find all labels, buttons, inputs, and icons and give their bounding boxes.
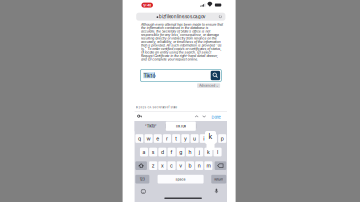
button[interactable]: w [144, 134, 153, 143]
staticText: r [166, 135, 168, 142]
button[interactable]: space [158, 175, 204, 183]
button[interactable]: t [172, 134, 180, 143]
button[interactable]: m [204, 161, 212, 170]
button[interactable]: b [186, 161, 194, 170]
button[interactable]: d [158, 148, 166, 156]
staticText: z [152, 163, 155, 169]
button[interactable]: Advanced [197, 83, 220, 88]
staticText: Done [212, 115, 221, 120]
button[interactable]: f [167, 148, 176, 156]
staticText: p [221, 135, 224, 142]
button[interactable]: c [168, 161, 176, 170]
button[interactable]: p [218, 134, 226, 143]
staticText: h [188, 149, 191, 155]
button[interactable]: y [181, 134, 189, 143]
staticText: c [170, 163, 173, 169]
button[interactable]: k [204, 148, 212, 156]
staticText: l [217, 149, 218, 155]
staticText: t [175, 135, 177, 142]
button[interactable]: Emoji keyboard [141, 189, 146, 194]
button[interactable]: x [158, 161, 166, 170]
staticText: j [199, 149, 200, 155]
button[interactable]: g [177, 148, 185, 156]
staticText: m [206, 163, 210, 169]
button[interactable]: n [195, 161, 203, 170]
staticText: w [147, 135, 151, 142]
button[interactable]: r [163, 134, 171, 143]
button[interactable]: h [186, 148, 194, 156]
button[interactable]: z [149, 161, 157, 170]
staticText: e [156, 135, 159, 142]
staticText: k [207, 149, 210, 155]
staticText: x [161, 163, 164, 169]
staticText: Tikto [143, 72, 155, 79]
button[interactable]: e [154, 134, 162, 143]
staticText: space [176, 177, 186, 181]
staticText: bizfileonline.sos.ca.gov [159, 14, 205, 19]
button[interactable]: 123 [135, 175, 149, 183]
button[interactable]: Done [212, 115, 221, 120]
staticText: v [179, 163, 182, 169]
button[interactable]: i [200, 134, 208, 143]
button[interactable]: bizfileonline.sos.ca.gov [136, 13, 225, 21]
staticText: “Tikto” [145, 124, 157, 128]
staticText: y [184, 135, 187, 142]
button[interactable]: Dictate [214, 189, 219, 193]
staticText: ⌄ [216, 84, 218, 87]
staticText: b [188, 163, 191, 169]
button[interactable]: v [177, 161, 185, 170]
staticText: d [161, 149, 164, 155]
staticText: a [142, 149, 145, 155]
button[interactable]: return [211, 175, 226, 183]
button[interactable]: Next field [203, 115, 206, 117]
button[interactable]: Search [211, 71, 220, 80]
staticText: g [179, 149, 182, 155]
staticText: s [152, 149, 155, 155]
button[interactable]: TikTok [166, 121, 196, 131]
button[interactable]: “Tikto” [136, 121, 166, 131]
staticText: f [171, 149, 173, 155]
staticText: q [138, 135, 141, 142]
staticText: Although every attempt has been made to … [141, 22, 223, 61]
button[interactable]: Previous field [195, 115, 198, 117]
staticText: o [211, 135, 214, 142]
button[interactable]: o [209, 134, 217, 143]
staticText: k [208, 132, 212, 141]
button[interactable]: q [135, 134, 143, 143]
button[interactable]: u [191, 134, 199, 143]
staticText: 9:41 [143, 3, 151, 7]
button[interactable]: a [140, 148, 148, 156]
button[interactable]: Shift [135, 161, 147, 170]
button[interactable]: s [149, 148, 157, 156]
button[interactable]: j [195, 148, 203, 156]
button[interactable]: Delete [215, 161, 226, 170]
staticText: u [193, 135, 196, 142]
staticText: i [203, 135, 204, 142]
staticText: © 2025 CA Secretary of State [136, 106, 178, 109]
staticText: Advanced [199, 84, 215, 87]
button[interactable]: l [213, 148, 222, 156]
staticText: return [214, 177, 223, 181]
staticText: TikTok [175, 124, 186, 128]
staticText: 123 [140, 177, 145, 181]
staticText: n [198, 163, 201, 169]
